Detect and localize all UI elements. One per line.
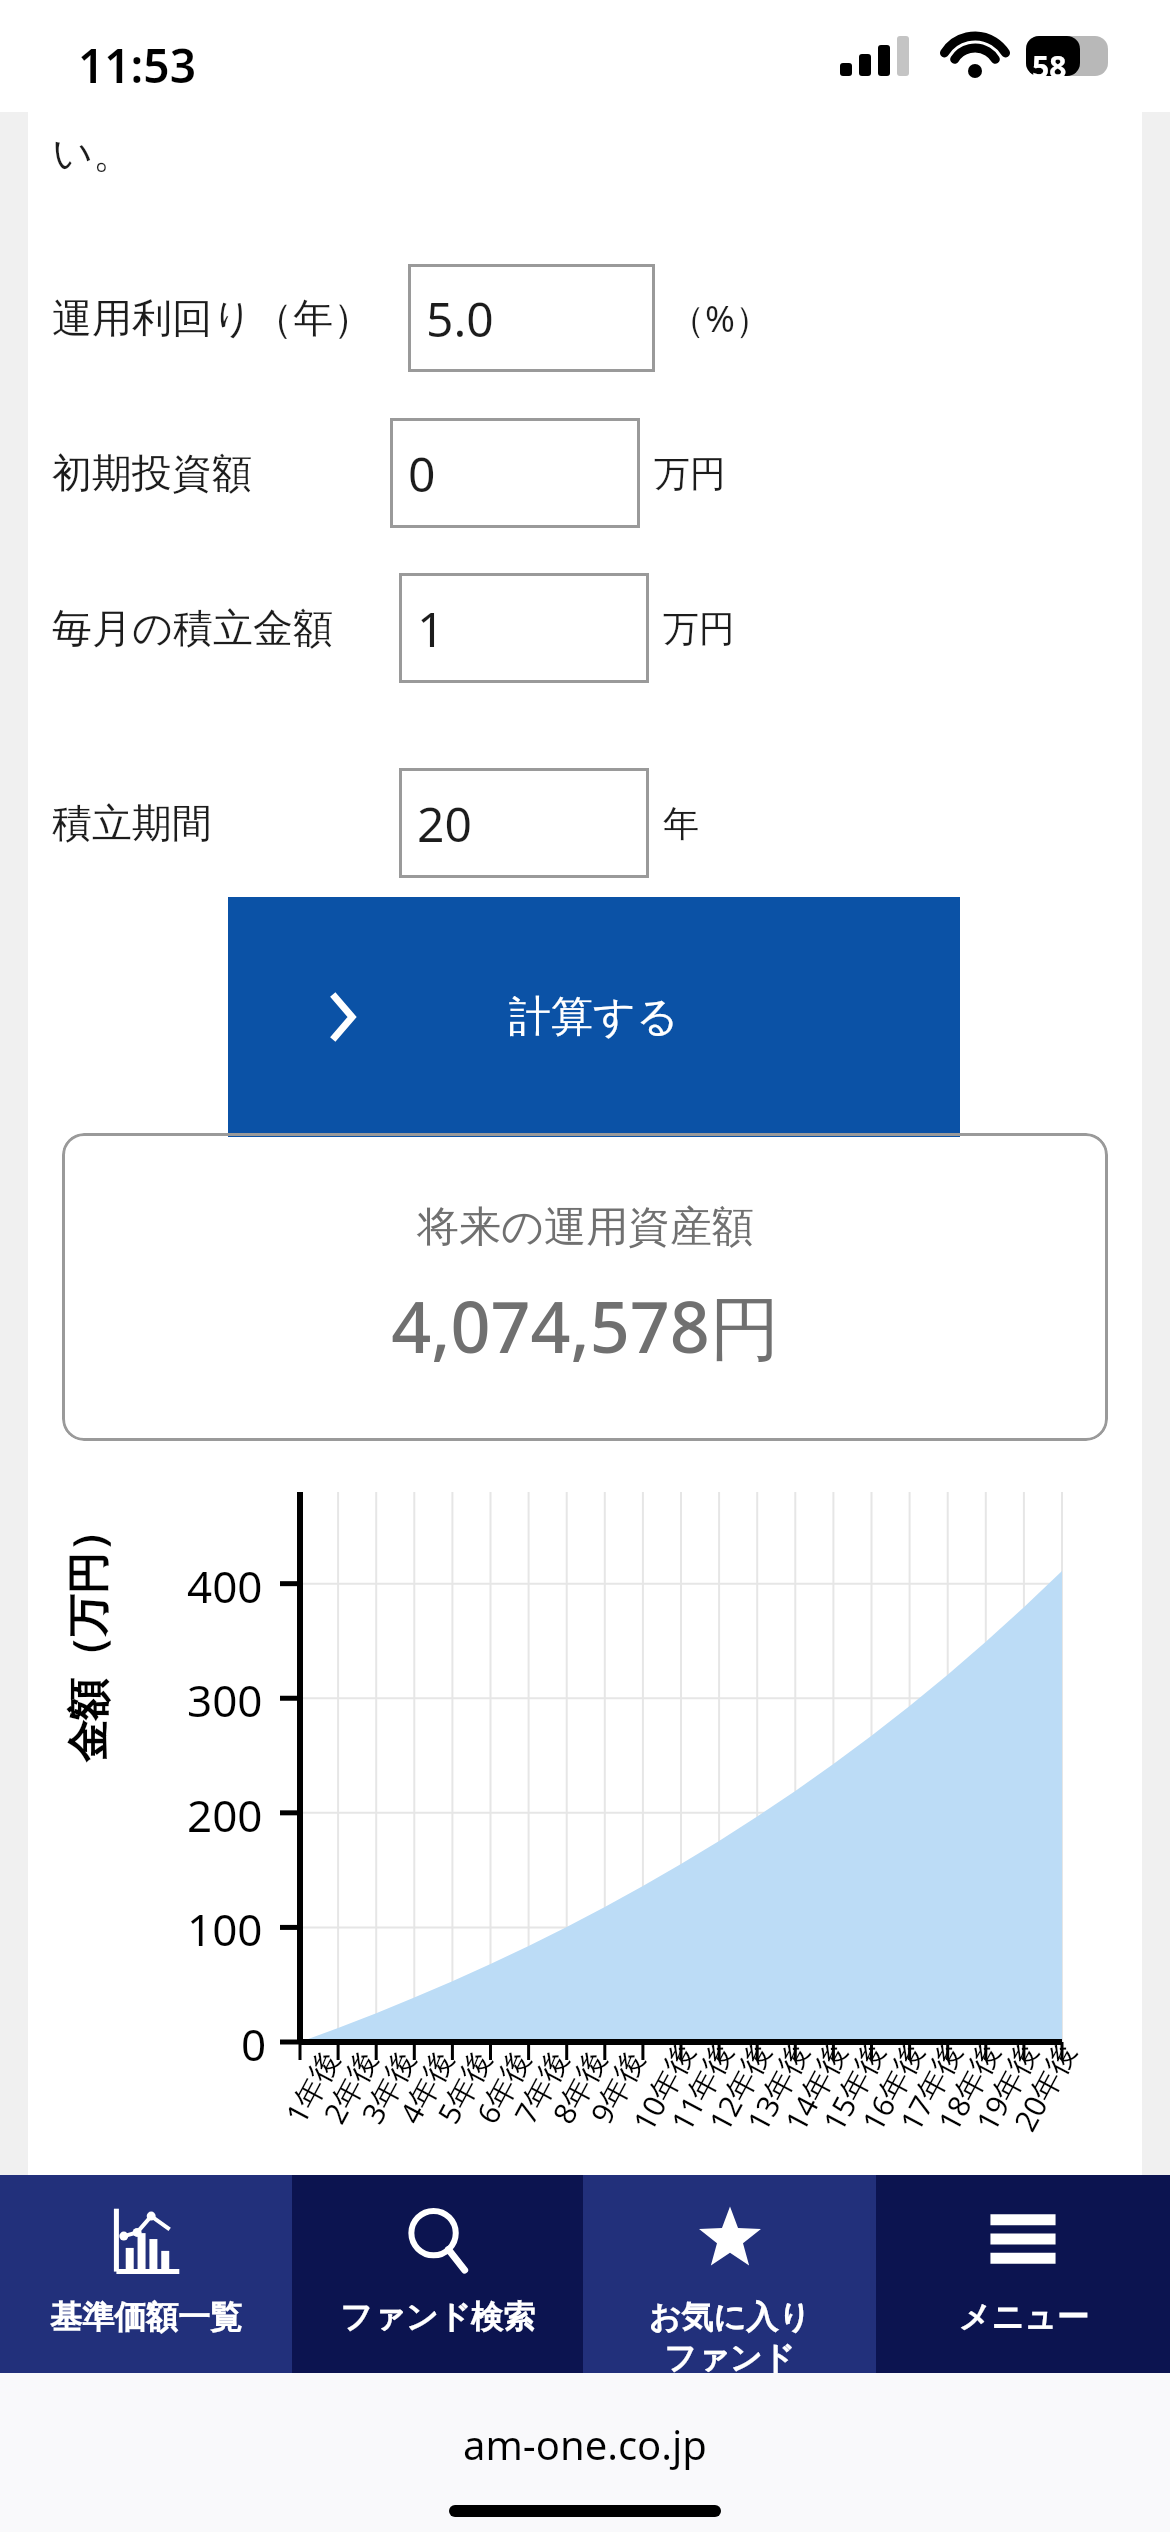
- button[interactable]: 20: [399, 768, 649, 878]
- staticText: 400: [187, 1556, 263, 1616]
- staticText: 2年後: [314, 2042, 386, 2130]
- staticText: 20: [417, 791, 472, 856]
- staticText: 0: [408, 441, 436, 506]
- staticText: 8年後: [543, 2042, 615, 2130]
- staticText: 200: [187, 1785, 263, 1845]
- staticText: 運用利回り（年）: [52, 293, 373, 343]
- staticText: （%）: [669, 294, 771, 343]
- button[interactable]: メニュー: [876, 2175, 1170, 2373]
- staticText: メニュー: [958, 2297, 1089, 2337]
- staticText: 58: [1032, 46, 1067, 87]
- staticText: 7年後: [505, 2042, 577, 2130]
- staticText: 11年後: [661, 2035, 742, 2138]
- staticText: 5年後: [428, 2042, 500, 2130]
- button[interactable]: お気に入りファンド: [583, 2175, 876, 2373]
- staticText: 将来の運用資産額: [417, 1201, 754, 1254]
- staticText: ファンド検索: [340, 2297, 535, 2337]
- staticText: 金額（万円）: [61, 1466, 114, 1806]
- staticText: お気に入り ファンド: [648, 2297, 811, 2373]
- staticText: 9年後: [581, 2042, 653, 2130]
- staticText: 300: [187, 1670, 263, 1730]
- staticText: 10年後: [623, 2035, 704, 2138]
- staticText: 積立期間: [52, 798, 212, 848]
- staticText: 5.0: [426, 286, 494, 351]
- staticText: 3年後: [352, 2042, 424, 2130]
- staticText: 18年後: [928, 2035, 1009, 2138]
- staticText: 13年後: [737, 2035, 818, 2138]
- staticText: 1: [417, 596, 445, 661]
- button[interactable]: 5.0: [408, 264, 655, 372]
- staticText: 4年後: [390, 2042, 462, 2130]
- staticText: 1年後: [276, 2042, 348, 2130]
- staticText: 計算する: [509, 991, 679, 1044]
- staticText: 19年後: [966, 2035, 1047, 2138]
- staticText: 初期投資額: [52, 448, 252, 498]
- staticText: 11:53: [78, 34, 196, 97]
- staticText: 16年後: [852, 2035, 933, 2138]
- button[interactable]: 基準価額一覧: [0, 2175, 292, 2373]
- staticText: 万円: [654, 451, 726, 496]
- staticText: い。: [52, 128, 133, 178]
- staticText: 0: [241, 2014, 267, 2074]
- button[interactable]: 1: [399, 573, 649, 683]
- staticText: 年: [663, 801, 699, 846]
- button[interactable]: 計算する: [228, 897, 960, 1137]
- staticText: 4,074,578円: [391, 1278, 780, 1374]
- staticText: 20年後: [1004, 2035, 1085, 2138]
- button[interactable]: ファンド検索: [292, 2175, 583, 2373]
- staticText: 6年後: [467, 2042, 539, 2130]
- staticText: 100: [187, 1899, 263, 1959]
- button[interactable]: 0: [390, 418, 640, 528]
- staticText: 毎月の積立金額: [52, 603, 333, 653]
- staticText: 12年後: [699, 2035, 780, 2138]
- staticText: 基準価額一覧: [50, 2297, 242, 2337]
- staticText: 15年後: [813, 2035, 894, 2138]
- staticText: 万円: [663, 606, 735, 651]
- staticText: 14年後: [775, 2035, 856, 2138]
- staticText: am-one.co.jp: [463, 2417, 707, 2471]
- staticText: 17年後: [890, 2035, 971, 2138]
